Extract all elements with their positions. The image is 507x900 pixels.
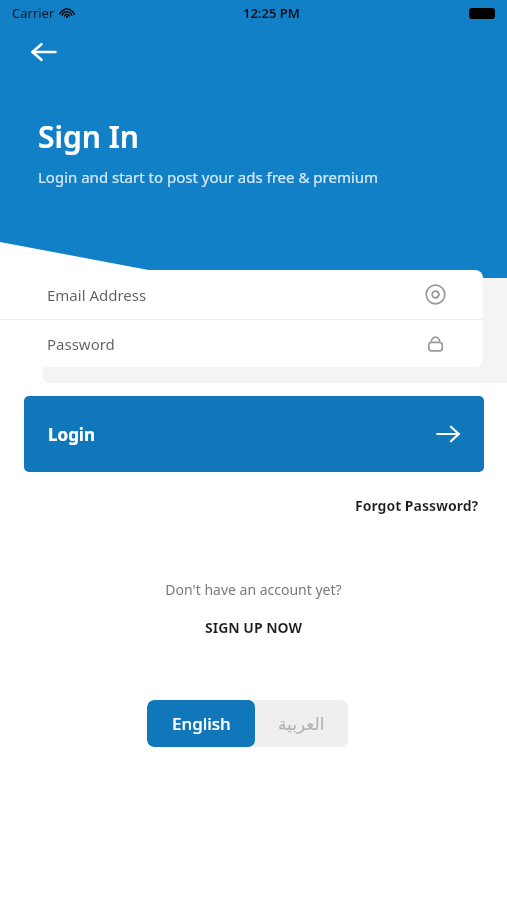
button[interactable]: Back xyxy=(22,30,66,74)
staticText: Login and start to post your ads free & … xyxy=(38,167,379,187)
button[interactable]: English xyxy=(147,700,255,747)
staticText: SIGN UP NOW xyxy=(205,618,303,637)
staticText: Email Address xyxy=(47,285,147,305)
button[interactable]: العربية xyxy=(255,700,348,747)
staticText: العربية xyxy=(278,714,325,734)
staticText: Login xyxy=(48,423,96,446)
staticText: Sign In xyxy=(38,116,139,157)
staticText: Don't have an account yet? xyxy=(165,580,342,599)
button[interactable]: Password xyxy=(0,320,483,367)
button[interactable]: SIGN UP NOW xyxy=(185,613,323,642)
staticText: Password xyxy=(47,334,115,354)
staticText: 12:25 PM xyxy=(243,4,300,22)
button[interactable]: Login xyxy=(24,396,484,472)
staticText: Forgot Password? xyxy=(355,496,479,515)
staticText: Carrier xyxy=(12,4,55,22)
staticText: English xyxy=(172,712,231,735)
button[interactable]: Email Address xyxy=(0,270,483,319)
button[interactable]: Forgot Password? xyxy=(327,490,507,521)
